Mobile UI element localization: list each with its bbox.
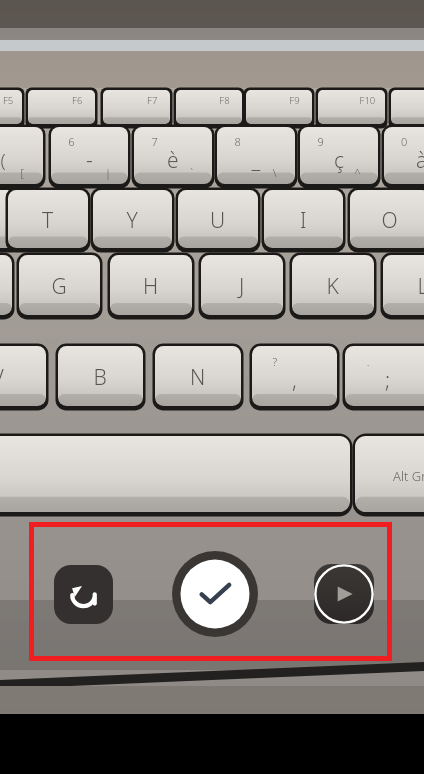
button[interactable]: Undo [54, 565, 113, 624]
button[interactable]: Confirm [172, 551, 258, 637]
button[interactable]: Play [314, 564, 374, 624]
